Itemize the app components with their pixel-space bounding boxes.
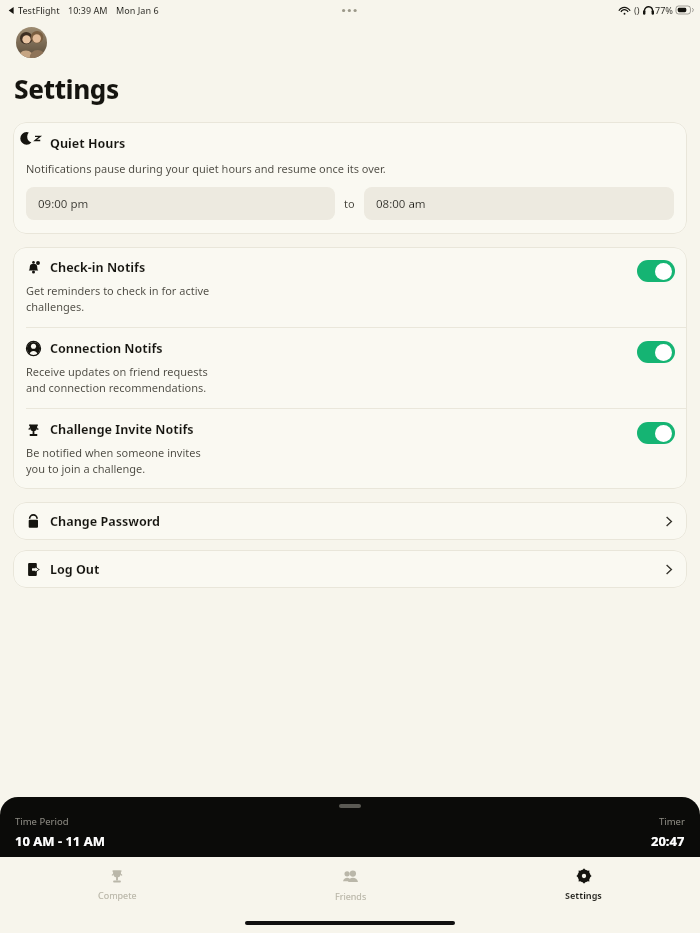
staticText: Settings <box>565 889 602 901</box>
button[interactable]: Profile <box>16 27 47 58</box>
button[interactable]: Connection Notifs toggle, on <box>637 341 675 363</box>
staticText: Receive updates on friend requests and c… <box>26 364 208 395</box>
staticText: 20:47 <box>651 832 685 850</box>
staticText: Notifications pause during your quiet ho… <box>26 161 386 176</box>
staticText: Connection Notifs <box>50 340 163 357</box>
button[interactable]: Check-in Notifs toggle, on <box>637 260 675 282</box>
staticText: Challenge Invite Notifs <box>50 421 194 438</box>
staticText: 09:00 pm <box>38 196 89 212</box>
button[interactable]: Change Password <box>13 502 687 540</box>
staticText: Change Password <box>50 513 160 530</box>
staticText: Timer <box>659 815 685 828</box>
staticText: Compete <box>98 889 137 901</box>
staticText: Quiet Hours <box>50 135 126 152</box>
button[interactable]: Settings <box>467 857 700 912</box>
staticText: 08:00 am <box>376 196 426 212</box>
staticText: to <box>344 196 355 211</box>
staticText: Get reminders to check in for active cha… <box>26 283 210 314</box>
staticText: Log Out <box>50 561 100 578</box>
staticText: 10 AM - 11 AM <box>15 832 105 850</box>
staticText: Check-in Notifs <box>50 259 146 276</box>
staticText: Mon Jan 6 <box>116 4 159 16</box>
staticText: () <box>634 4 640 16</box>
button[interactable]: 08:00 am <box>364 187 674 220</box>
staticText: 77% <box>655 4 673 16</box>
staticText: TestFlight <box>18 4 60 16</box>
staticText: 10:39 AM <box>68 4 108 16</box>
staticText: Be notified when someone invites you to … <box>26 445 201 476</box>
staticText: Settings <box>14 71 119 106</box>
button[interactable]: Challenge Invite Notifs toggle, on <box>637 422 675 444</box>
staticText: Time Period <box>15 815 69 828</box>
staticText: Friends <box>335 890 367 902</box>
button[interactable]: 09:00 pm <box>26 187 335 220</box>
button[interactable]: Log Out <box>13 550 687 588</box>
button[interactable]: Friends <box>234 857 467 912</box>
button[interactable]: Compete <box>0 857 234 912</box>
